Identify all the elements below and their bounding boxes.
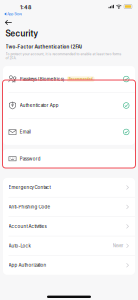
button[interactable]: Passkeys (Biometrics)	[3, 66, 135, 92]
button[interactable]: Auto-Lock	[3, 236, 135, 255]
button[interactable]: Password	[3, 149, 135, 169]
button[interactable]: Back	[1, 17, 15, 28]
staticText: App Authorization	[8, 263, 46, 268]
button[interactable]: Authenticator App	[3, 92, 135, 118]
staticText: Two-Factor Authentication (2FA)	[5, 44, 82, 49]
staticText: Auto-Lock	[8, 243, 30, 248]
staticText: To protect your account, it is recommend…	[5, 52, 121, 60]
staticText: 1:48	[20, 4, 31, 10]
button[interactable]: Emergency Contact	[3, 178, 135, 197]
button[interactable]: Anti-Phishing Code	[3, 197, 135, 216]
staticText: Email	[20, 129, 31, 135]
staticText: Authenticator App	[20, 103, 59, 108]
staticText: Account Activities	[8, 224, 46, 229]
staticText: Emergency Contact	[8, 185, 50, 190]
staticText: Password	[20, 156, 41, 162]
button[interactable]: Email	[3, 119, 135, 145]
button[interactable]: Account Activities	[3, 217, 135, 236]
staticText: Anti-Phishing Code	[8, 204, 50, 209]
staticText: Security	[5, 28, 37, 38]
staticText: App Store	[7, 12, 22, 16]
staticText: Passkeys (Biometrics)	[20, 76, 65, 82]
staticText: Never	[113, 243, 124, 248]
button[interactable]: App Authorization	[3, 256, 135, 275]
staticText: Recommended	[69, 77, 93, 81]
